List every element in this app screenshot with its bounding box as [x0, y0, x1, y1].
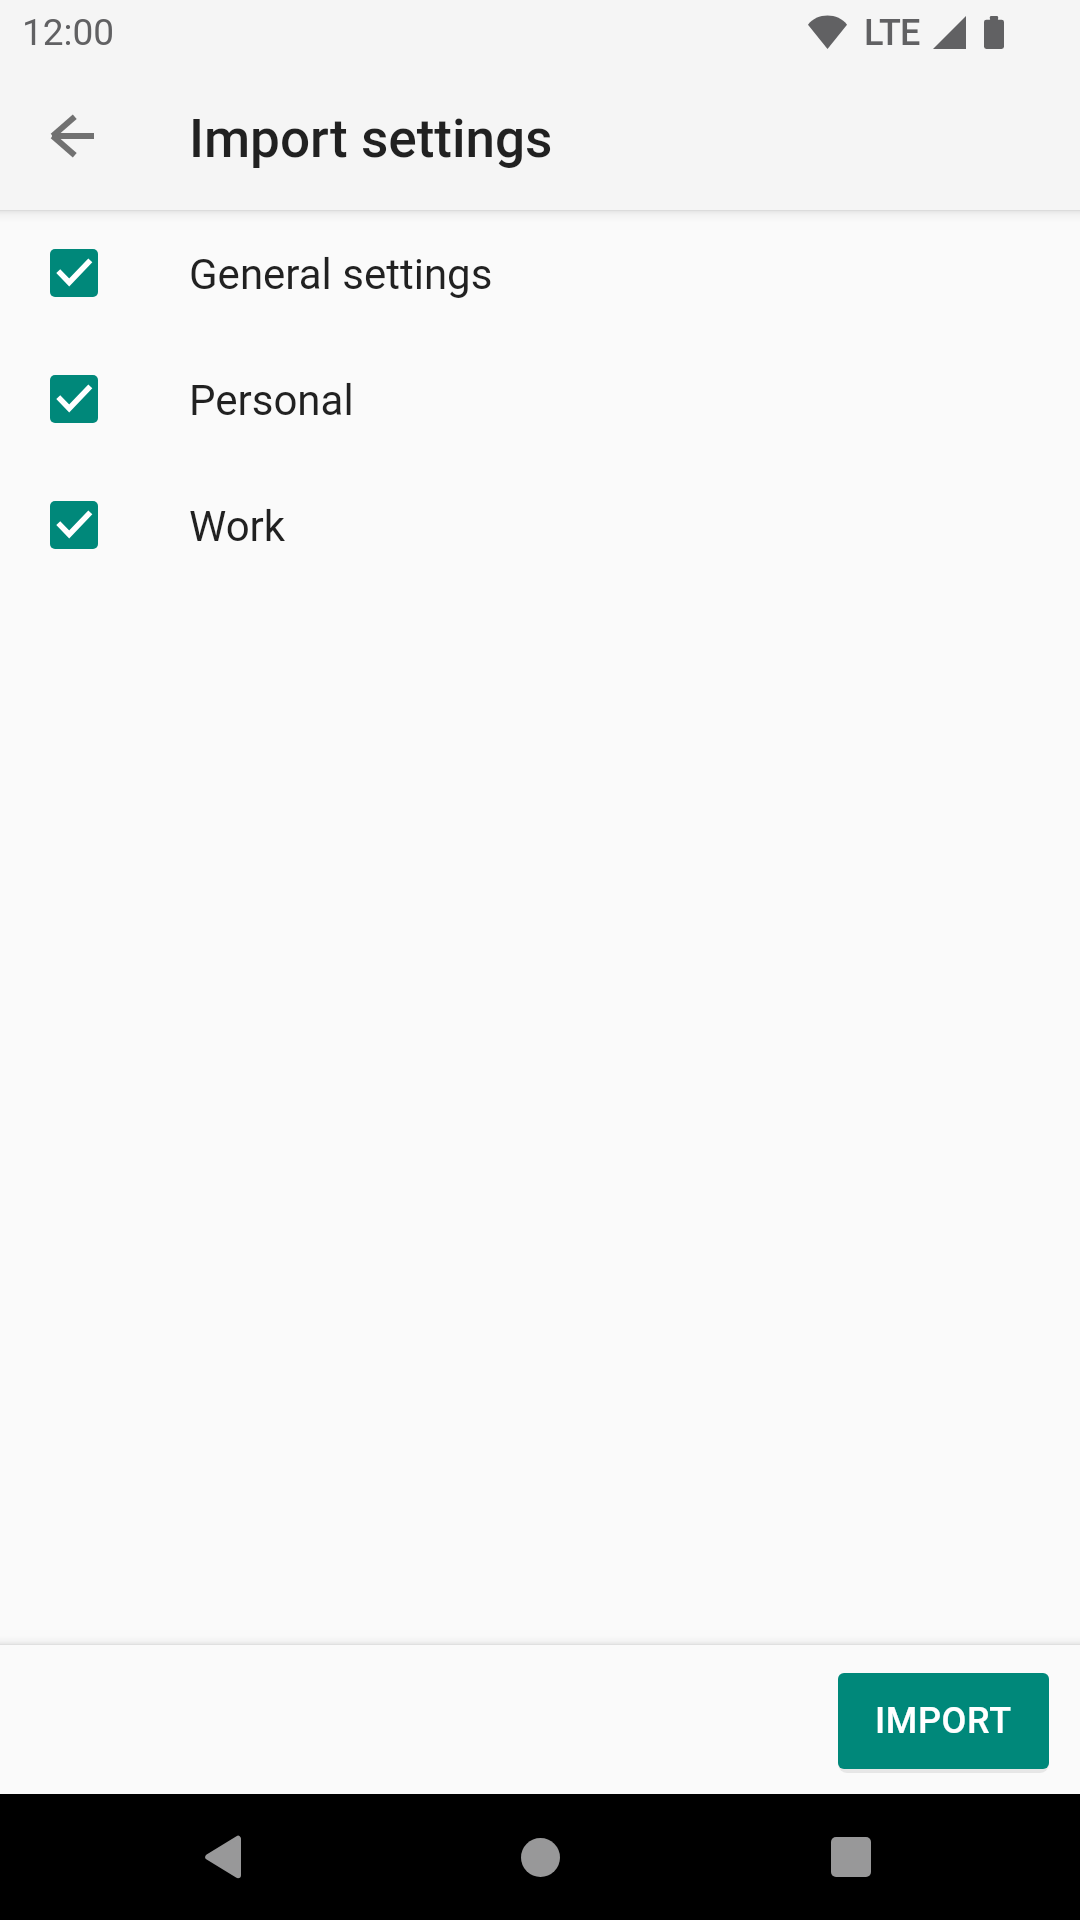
- button[interactable]: Navigate up: [17, 82, 125, 190]
- staticText: Personal: [189, 376, 354, 425]
- button[interactable]: Recent apps: [788, 1794, 914, 1920]
- staticText: General settings: [189, 250, 493, 299]
- button[interactable]: General settings: [0, 210, 1080, 336]
- button[interactable]: IMPORT: [838, 1673, 1049, 1769]
- staticText: Import settings: [189, 108, 553, 170]
- staticText: LTE: [864, 12, 920, 54]
- button[interactable]: Home: [477, 1794, 603, 1920]
- staticText: 12:00: [22, 11, 115, 54]
- button[interactable]: Work: [0, 462, 1080, 588]
- button[interactable]: Personal: [0, 336, 1080, 462]
- button[interactable]: Back: [159, 1794, 285, 1920]
- staticText: IMPORT: [875, 1700, 1012, 1742]
- staticText: Work: [189, 502, 286, 551]
